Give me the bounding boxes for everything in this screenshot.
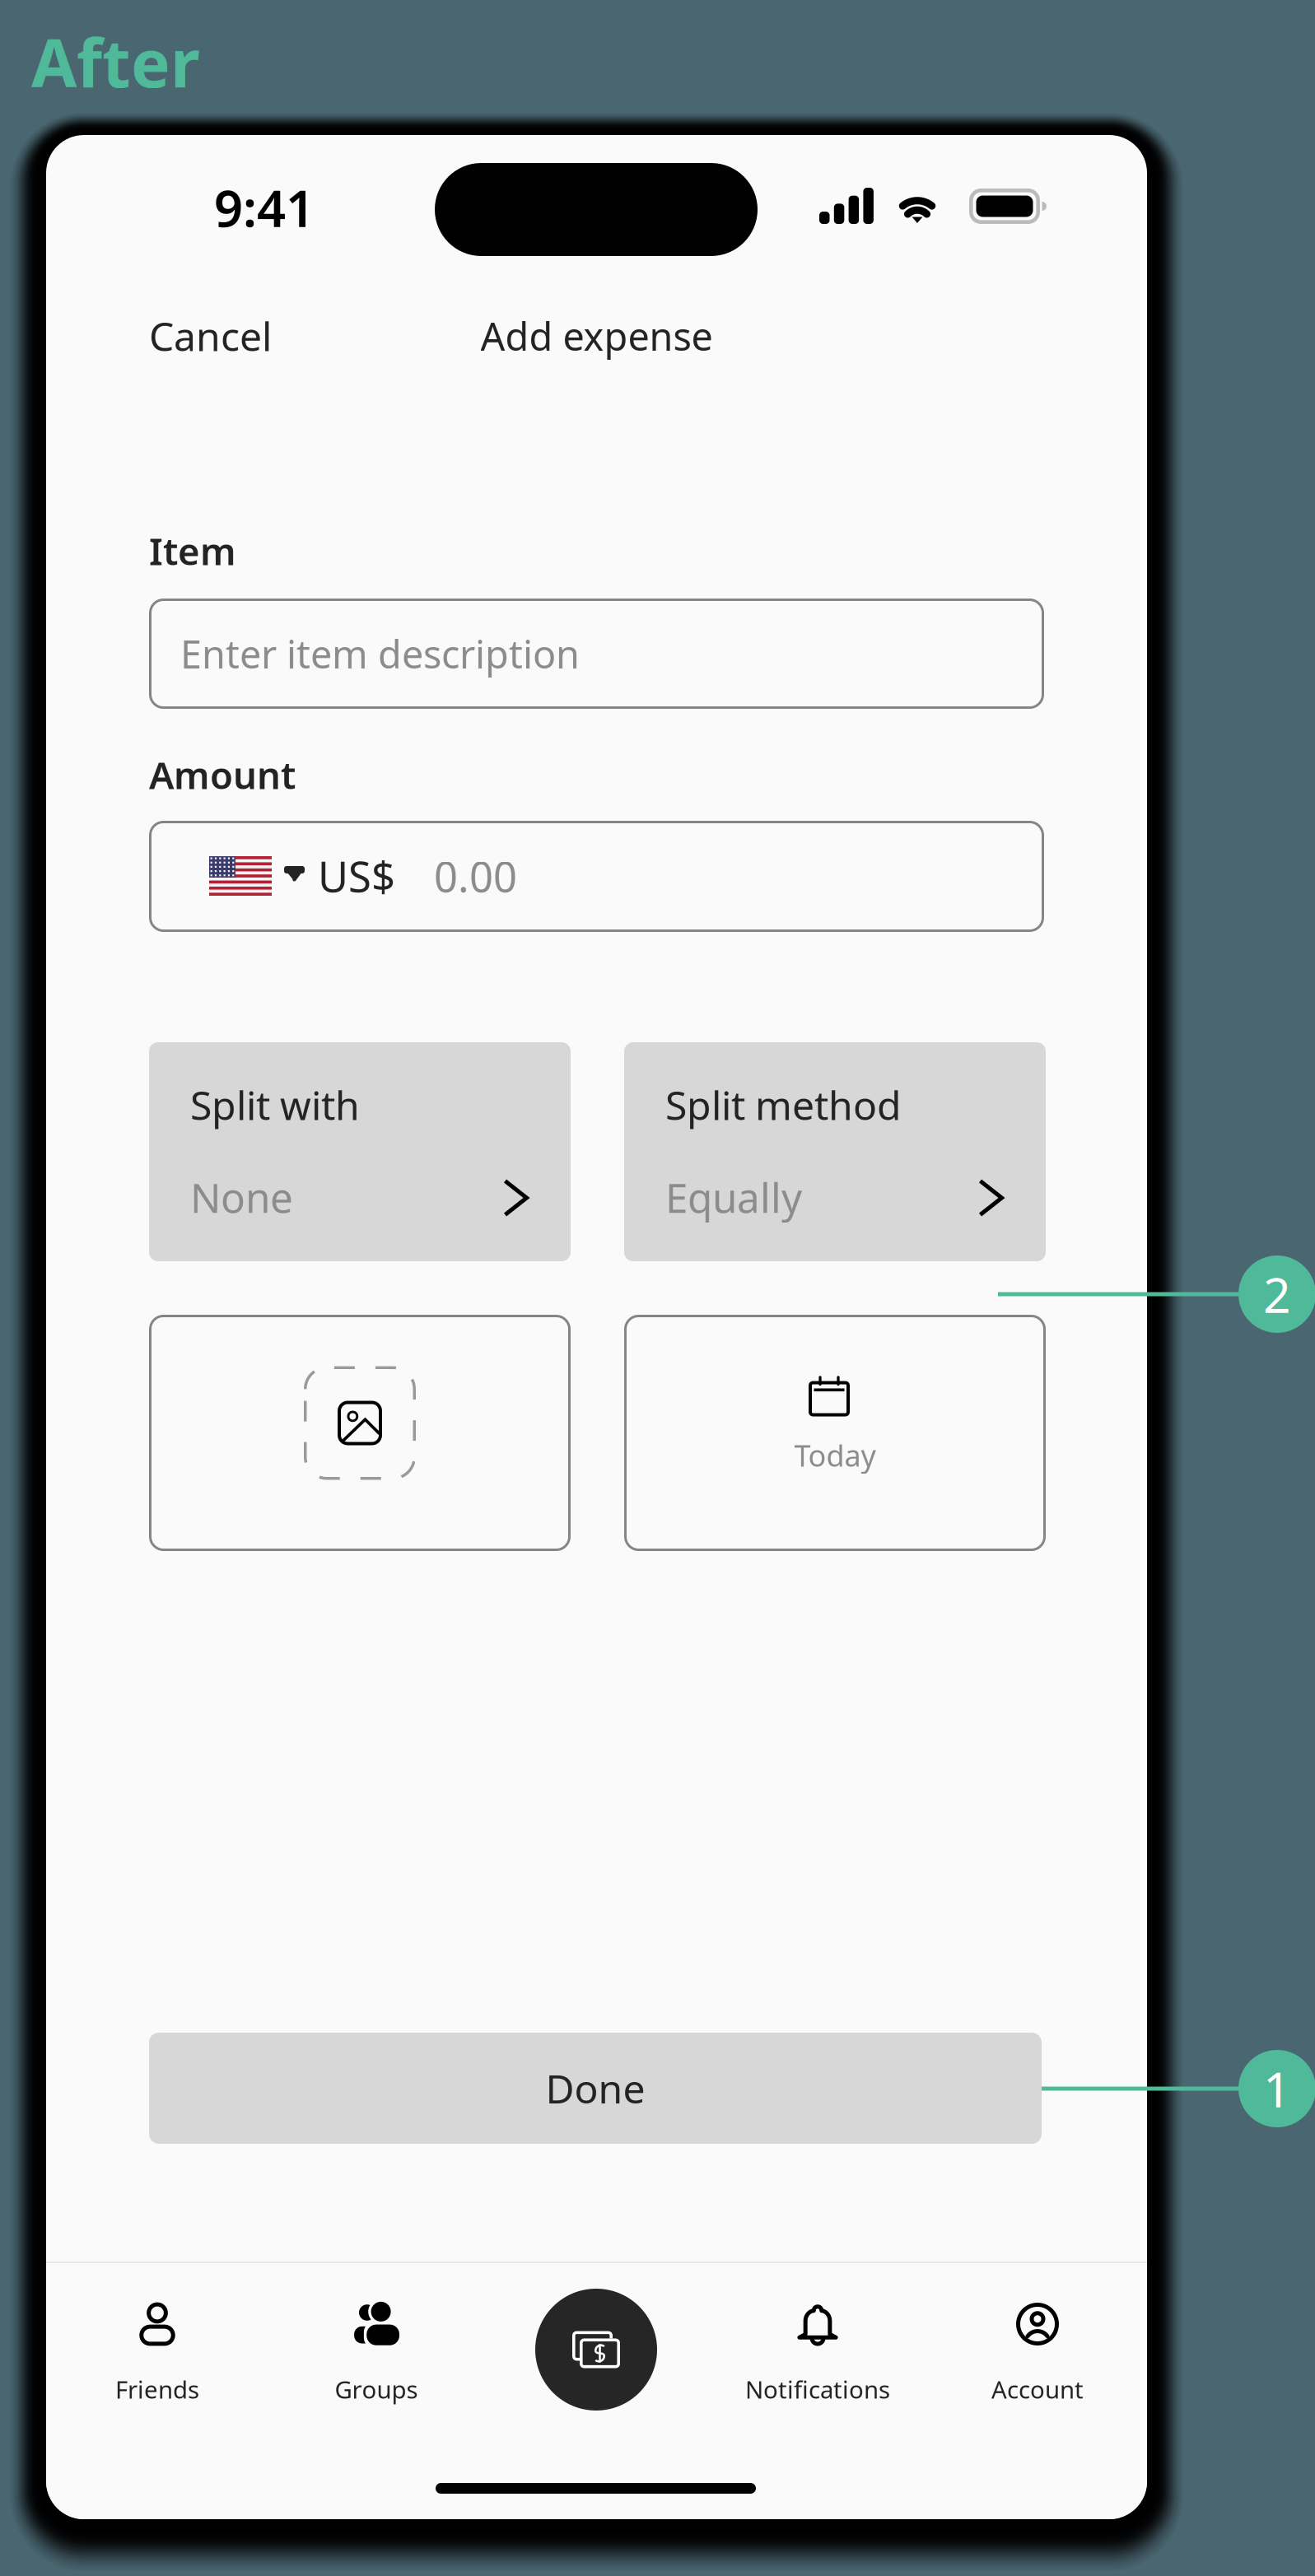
staticText: 9:41 xyxy=(214,174,315,241)
staticText: Done xyxy=(546,2062,645,2114)
staticText: 0.00 xyxy=(434,848,517,904)
staticText: Account xyxy=(991,2373,1084,2405)
button[interactable]: Split method xyxy=(624,1042,1046,1261)
button[interactable]: Notifications xyxy=(715,2291,921,2423)
button[interactable]: Cancel xyxy=(149,308,297,364)
staticText: Split with xyxy=(190,1079,360,1131)
staticText: 1 xyxy=(1263,2057,1291,2121)
staticText: Groups xyxy=(335,2373,418,2405)
button[interactable]: Add expense xyxy=(535,2289,657,2411)
button[interactable]: Groups xyxy=(273,2291,479,2423)
button[interactable]: Today xyxy=(624,1315,1046,1551)
staticText: Today xyxy=(794,1435,876,1475)
staticText: Split method xyxy=(665,1079,902,1131)
staticText: Amount xyxy=(149,750,296,799)
staticText: Friends xyxy=(115,2373,199,2405)
button[interactable]: Split with xyxy=(149,1042,571,1261)
staticText: Enter item description xyxy=(180,628,580,679)
button[interactable]: Add photo xyxy=(149,1315,571,1551)
button[interactable]: Account xyxy=(935,2291,1140,2423)
staticText: US$ xyxy=(318,848,395,904)
staticText: Item xyxy=(149,526,236,576)
button[interactable]: Done xyxy=(149,2033,1042,2144)
staticText: None xyxy=(190,1170,293,1224)
staticText: After xyxy=(31,18,200,106)
staticText: Equally xyxy=(665,1170,802,1224)
staticText: 2 xyxy=(1263,1262,1291,1326)
staticText: Notifications xyxy=(745,2373,890,2405)
button[interactable]: Friends xyxy=(54,2291,260,2423)
staticText: Cancel xyxy=(149,310,272,362)
staticText: Add expense xyxy=(480,310,713,361)
